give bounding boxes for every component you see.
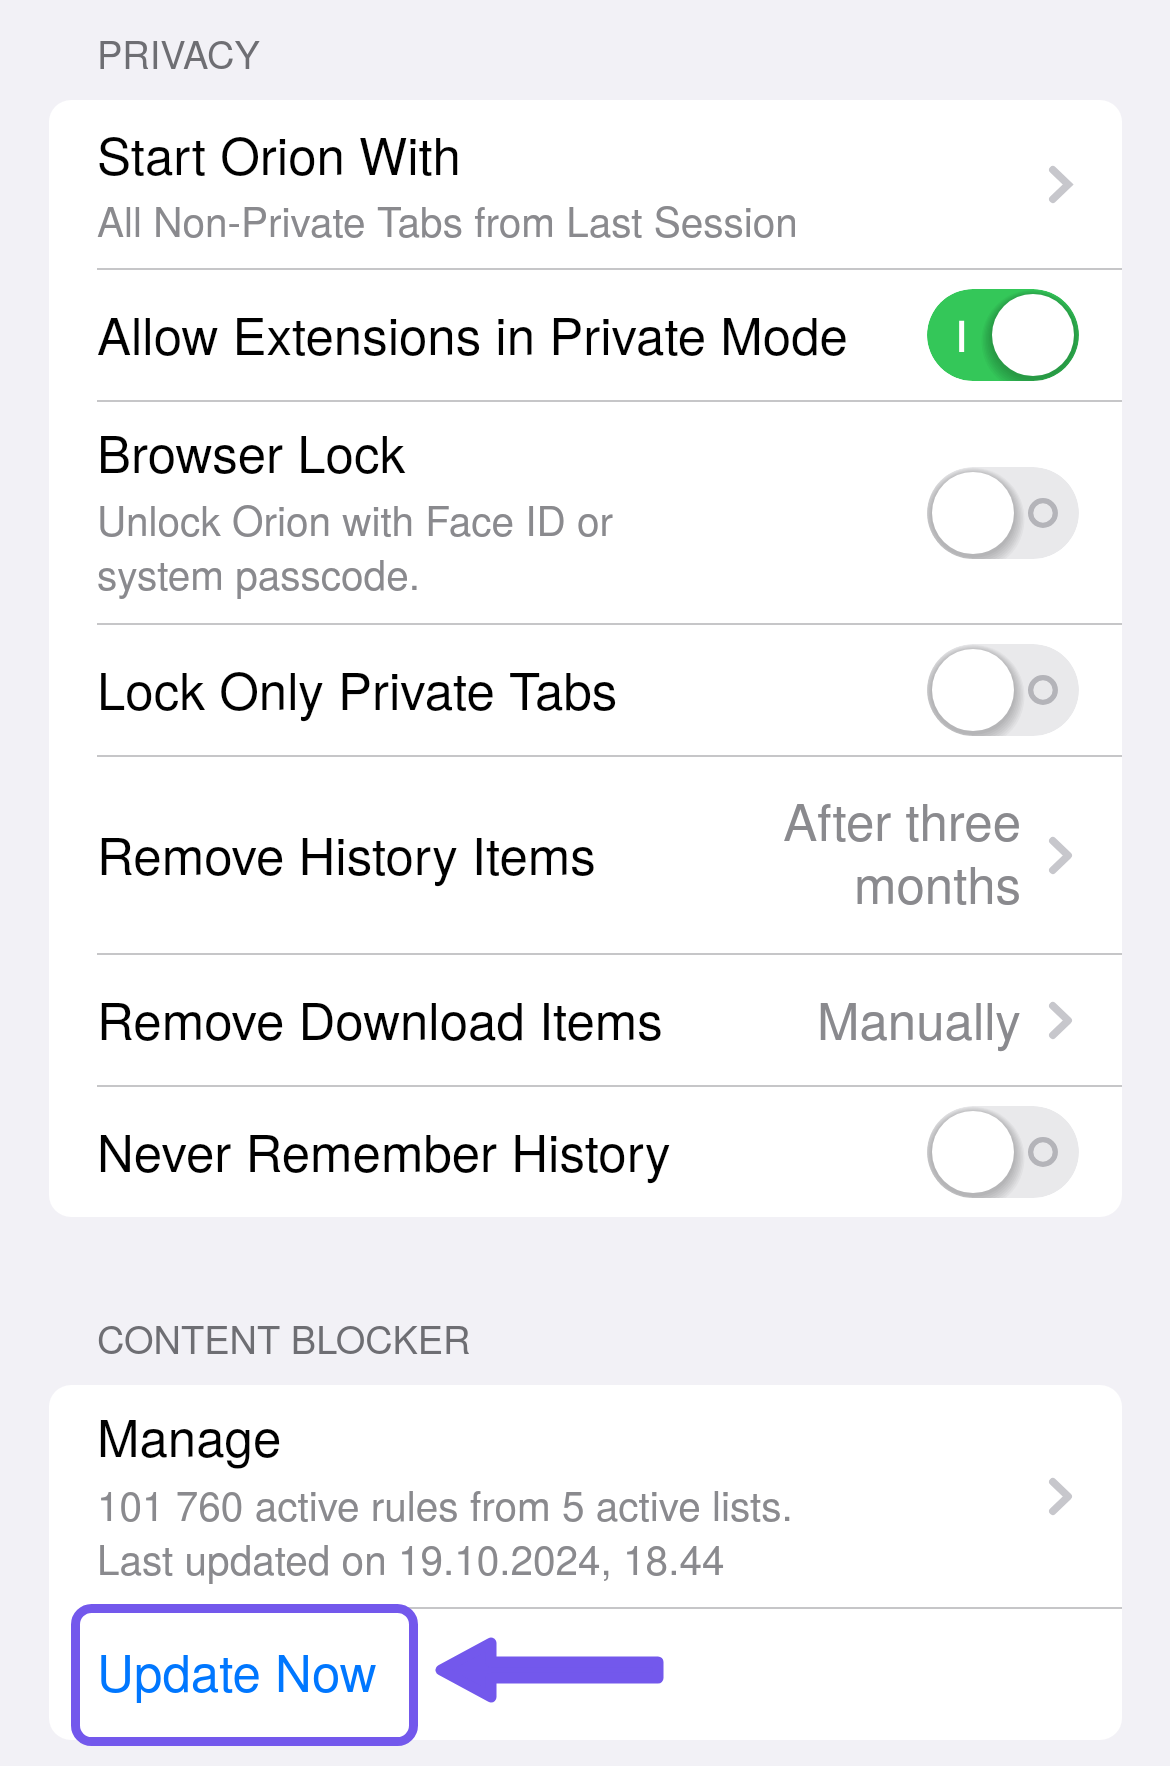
staticText: Remove Download Items [97,981,663,1054]
staticText: Lock Only Private Tabs [97,651,927,724]
staticText: Remove History Items [97,816,596,889]
other: Open [1049,1478,1072,1515]
staticText: CONTENT BLOCKER [97,1310,471,1364]
staticText: Start Orion With [97,116,461,189]
button[interactable]: Manage [49,1385,1122,1607]
button[interactable]: Toggle, off [927,1106,1079,1198]
staticText: Unlock Orion with Face ID or system pass… [97,490,614,602]
button[interactable]: Lock Only Private Tabs [49,625,1122,755]
button[interactable]: Toggle, on [927,289,1079,381]
button[interactable]: Allow Extensions in Private Mode [49,270,1122,400]
button[interactable]: Never Remember History [49,1087,1122,1217]
other: Open [1049,1002,1072,1039]
staticText: Update Now [97,1633,377,1706]
staticText: Manage [97,1398,282,1471]
staticText: All Non-Private Tabs from Last Session [97,191,798,249]
staticText: PRIVACY [97,25,260,79]
staticText: Manually [817,981,1021,1054]
other: Open [1049,837,1072,874]
button[interactable]: Browser Lock [49,402,1122,623]
other: Open [1049,166,1072,203]
button[interactable]: Remove History Items [49,757,1122,953]
staticText: Browser Lock [97,414,406,487]
staticText: Never Remember History [97,1113,927,1186]
staticText: After three months [761,782,1021,919]
staticText: 101 760 active rules from 5 active lists… [97,1475,793,1587]
button[interactable]: Update Now [49,1609,1122,1740]
staticText: Allow Extensions in Private Mode [97,296,927,369]
button[interactable]: Remove Download Items [49,955,1122,1085]
button[interactable]: Toggle, off [927,467,1079,559]
button[interactable]: Toggle, off [927,644,1079,736]
button[interactable]: Start Orion With [49,100,1122,268]
